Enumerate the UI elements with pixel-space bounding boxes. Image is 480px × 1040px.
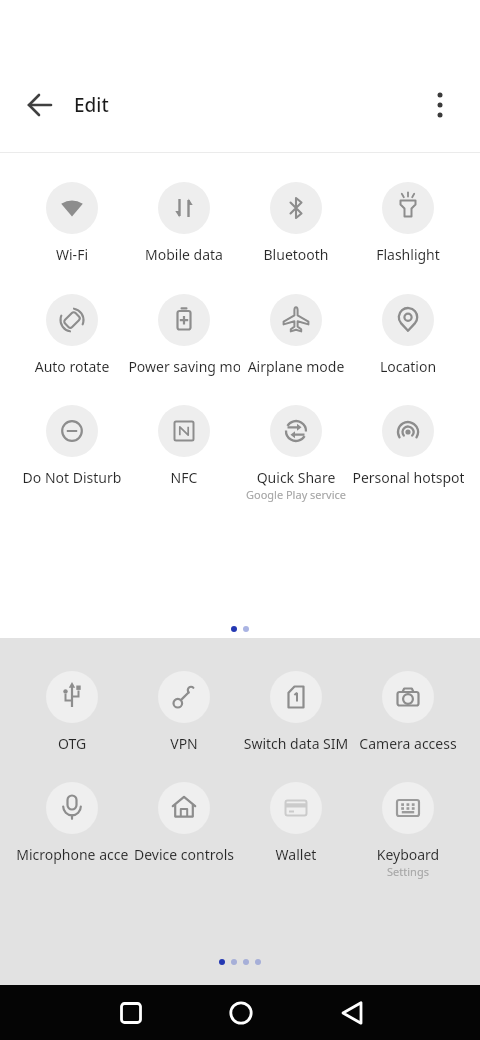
staticText: OTG [16, 734, 128, 753]
button[interactable] [416, 83, 464, 127]
staticText: Bluetooth [240, 245, 352, 264]
button[interactable]: Airplane mode [240, 294, 352, 376]
button[interactable] [14, 83, 66, 127]
staticText: Device controls [128, 845, 240, 864]
staticText: Power saving mode [128, 357, 240, 376]
staticText: Switch data SIM [240, 734, 352, 753]
button[interactable]: Switch data SIM [240, 671, 352, 753]
staticText: Wi-Fi [16, 245, 128, 264]
staticText: Wallet [240, 845, 352, 864]
staticText: Camera access [352, 734, 464, 753]
staticText: Google Play service [240, 487, 352, 502]
staticText: Airplane mode [240, 357, 352, 376]
button[interactable]: Keyboard [352, 782, 464, 879]
button[interactable]: Personal hotspot [352, 405, 464, 487]
staticText: Auto rotate [16, 357, 128, 376]
button[interactable] [213, 985, 269, 1040]
button[interactable]: Quick Share [240, 405, 352, 502]
staticText: Mobile data [128, 245, 240, 264]
button[interactable]: Camera access [352, 671, 464, 753]
button[interactable]: Mobile data [128, 182, 240, 264]
staticText: Edit [74, 92, 109, 118]
button[interactable]: Location [352, 294, 464, 376]
button[interactable]: NFC [128, 405, 240, 487]
staticText: Location [352, 357, 464, 376]
staticText: Quick Share [240, 468, 352, 487]
button[interactable] [324, 985, 380, 1040]
button[interactable]: OTG [16, 671, 128, 753]
button[interactable]: Flashlight [352, 182, 464, 264]
staticText: Flashlight [352, 245, 464, 264]
button[interactable]: Auto rotate [16, 294, 128, 376]
button[interactable]: VPN [128, 671, 240, 753]
button[interactable]: Bluetooth [240, 182, 352, 264]
staticText: Do Not Disturb [16, 468, 128, 487]
staticText: VPN [128, 734, 240, 753]
button[interactable]: Device controls [128, 782, 240, 864]
staticText: NFC [128, 468, 240, 487]
staticText: Personal hotspot [352, 468, 464, 487]
button[interactable] [103, 985, 159, 1040]
button[interactable]: Do Not Disturb [16, 405, 128, 487]
staticText: Keyboard [352, 845, 464, 864]
button[interactable]: Wallet [240, 782, 352, 864]
staticText: Microphone access [16, 845, 128, 864]
staticText: Settings [352, 864, 464, 879]
button[interactable]: Power saving mode [128, 294, 240, 376]
button[interactable]: Wi-Fi [16, 182, 128, 264]
button[interactable]: Microphone access [16, 782, 128, 864]
